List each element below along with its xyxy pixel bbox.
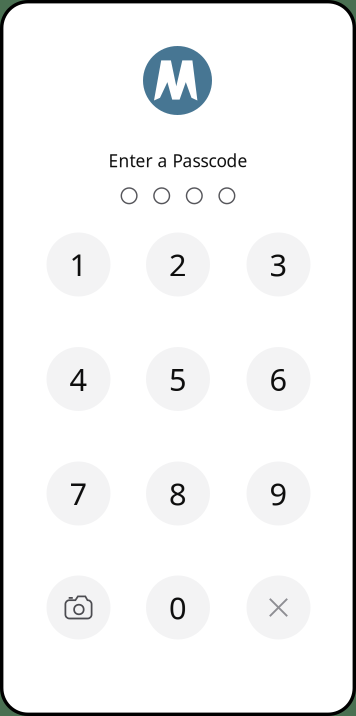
button[interactable]: 8 bbox=[146, 461, 210, 525]
staticText: 2 bbox=[169, 244, 187, 285]
button[interactable]: Delete bbox=[246, 575, 310, 639]
staticText: 6 bbox=[269, 359, 287, 399]
staticText: 0 bbox=[169, 587, 187, 628]
staticText: 1 bbox=[69, 244, 87, 285]
staticText: 9 bbox=[269, 473, 287, 514]
button[interactable]: 3 bbox=[246, 232, 310, 296]
staticText: 7 bbox=[69, 473, 87, 514]
staticText: 3 bbox=[269, 244, 287, 285]
button[interactable]: 1 bbox=[46, 232, 110, 296]
button[interactable]: 5 bbox=[146, 347, 210, 411]
staticText: 4 bbox=[69, 359, 87, 399]
button[interactable]: 7 bbox=[46, 461, 110, 525]
staticText: 5 bbox=[169, 359, 187, 399]
button[interactable]: 2 bbox=[146, 232, 210, 296]
staticText: Enter a Passcode bbox=[108, 149, 247, 172]
button[interactable]: 6 bbox=[246, 347, 310, 411]
button[interactable]: 4 bbox=[46, 347, 110, 411]
button[interactable]: Camera bbox=[46, 575, 110, 639]
staticText: 8 bbox=[169, 473, 187, 514]
button[interactable]: 9 bbox=[246, 461, 310, 525]
button[interactable]: 0 bbox=[146, 575, 210, 639]
